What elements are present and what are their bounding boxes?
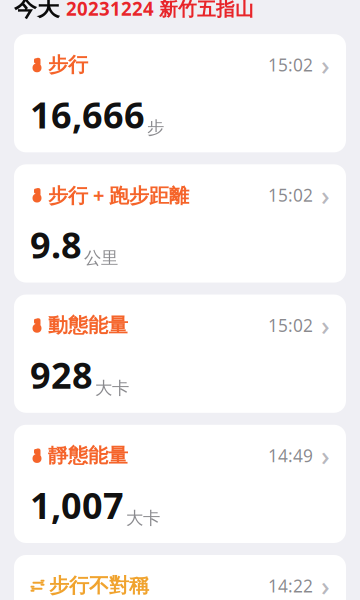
staticText: 步: [147, 117, 164, 138]
staticText: 大卡: [95, 377, 129, 399]
button[interactable]: 靜態能量: [14, 425, 346, 543]
staticText: 14:49: [268, 444, 313, 467]
staticText: 動態能量: [48, 313, 128, 338]
staticText: ›: [321, 438, 330, 473]
staticText: 步行不對稱: [49, 573, 149, 598]
staticText: 靜態能量: [48, 443, 128, 468]
staticText: 20231224 新竹五指山: [66, 0, 254, 21]
staticText: 9.8: [30, 221, 82, 269]
button[interactable]: 步行: [14, 34, 346, 152]
staticText: ›: [321, 568, 330, 600]
staticText: ›: [321, 47, 330, 82]
staticText: 16,666: [30, 90, 145, 138]
staticText: 14:22: [268, 574, 313, 597]
button[interactable]: 動態能量: [14, 295, 346, 413]
staticText: 公里: [84, 247, 118, 269]
staticText: 928: [30, 351, 93, 399]
staticText: 15:02: [268, 314, 313, 337]
staticText: 今天: [14, 0, 60, 22]
staticText: 步行 + 跑步距離: [48, 182, 189, 208]
staticText: 大卡: [126, 508, 160, 529]
staticText: 15:02: [268, 183, 313, 206]
staticText: ›: [321, 308, 330, 343]
staticText: 步行: [48, 52, 88, 77]
button[interactable]: 步行 + 跑步距離: [14, 164, 346, 282]
staticText: 15:02: [268, 53, 313, 76]
staticText: 1,007: [30, 481, 124, 529]
button[interactable]: 步行不對稱: [14, 555, 346, 600]
staticText: ›: [321, 177, 330, 213]
